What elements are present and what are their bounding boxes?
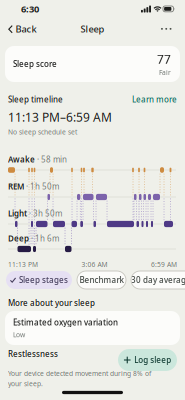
staticText: · 3h 50m <box>27 208 62 219</box>
staticText: Back <box>15 23 36 35</box>
staticText: · 1h 50m <box>24 181 59 192</box>
staticText: your sleep. <box>8 379 43 388</box>
staticText: Estimated oxygen variation <box>13 317 118 328</box>
staticText: More about your sleep <box>8 298 95 308</box>
staticText: Awake <box>8 154 35 165</box>
staticText: 11:13 PM–6:59 AM <box>8 109 112 125</box>
staticText: Deep <box>8 233 29 244</box>
button[interactable]: Sleep score <box>5 46 180 82</box>
staticText: Sleep stages <box>19 275 68 285</box>
button[interactable]: 30 day averages <box>131 271 185 289</box>
staticText: 6:30 <box>21 3 39 15</box>
button[interactable]: Estimated oxygen variation <box>5 311 180 345</box>
staticText: Fair <box>159 68 171 77</box>
staticText: · 1h 6m <box>29 233 59 244</box>
staticText: Light <box>8 208 27 219</box>
staticText: Your device detected movement during 8% … <box>8 369 151 378</box>
staticText: Log sleep <box>134 355 171 365</box>
staticText: Restlessness <box>8 349 58 359</box>
staticText: · 58 min <box>35 154 67 165</box>
button[interactable]: Sleep stages <box>6 271 72 289</box>
staticText: Benchmark <box>79 275 123 285</box>
staticText: No sleep schedule set <box>8 128 77 136</box>
staticText: 6:59 AM <box>151 260 177 269</box>
staticText: Learn more <box>132 94 177 105</box>
staticText: 3:06 AM <box>81 260 107 269</box>
button[interactable]: Back <box>0 23 36 35</box>
staticText: 30 day averages <box>131 275 185 285</box>
button[interactable]: Log sleep <box>118 349 177 371</box>
staticText: Sleep <box>80 23 104 35</box>
staticText: REM <box>8 181 24 192</box>
staticText: Sleep timeline <box>8 94 63 105</box>
button[interactable]: Benchmark <box>77 271 126 289</box>
staticText: Low <box>13 330 25 339</box>
button[interactable]: More options <box>161 28 185 30</box>
staticText: Sleep score <box>13 59 57 69</box>
staticText: 77 <box>157 51 171 67</box>
staticText: 11:13 PM <box>8 260 38 269</box>
button[interactable]: Learn more <box>132 94 185 105</box>
